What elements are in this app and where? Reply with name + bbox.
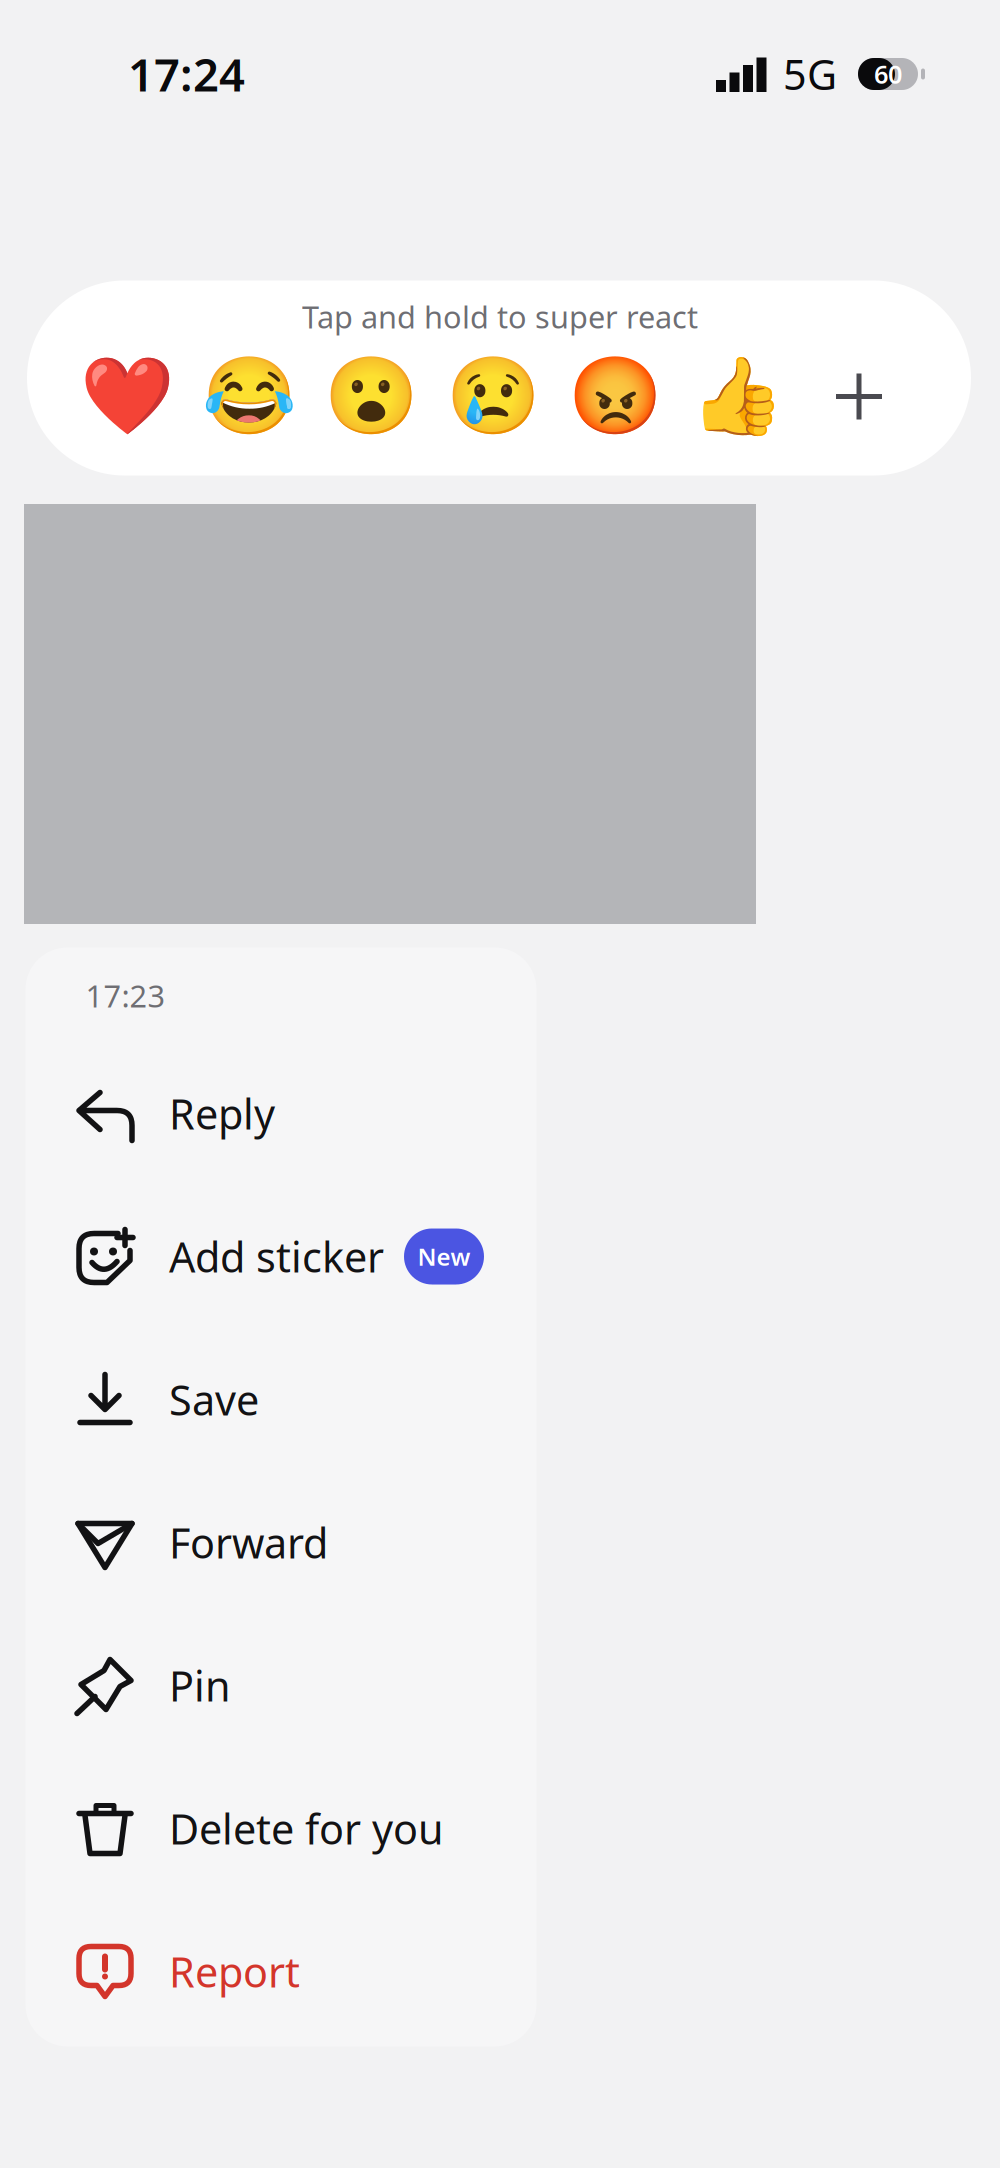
staticText: Report bbox=[169, 1944, 300, 1999]
button[interactable]: 😮 bbox=[310, 348, 432, 444]
button[interactable]: ❤️ bbox=[66, 348, 188, 444]
staticText: 😡 bbox=[567, 353, 662, 440]
staticText: Pin bbox=[169, 1658, 231, 1713]
button[interactable]: Pin bbox=[25, 1614, 536, 1757]
button[interactable]: Delete for you bbox=[25, 1757, 536, 1900]
button[interactable]: Add sticker bbox=[25, 1185, 536, 1328]
button[interactable]: Forward bbox=[25, 1471, 536, 1614]
staticText: 😮 bbox=[323, 353, 418, 440]
staticText: Reply bbox=[169, 1086, 275, 1141]
button[interactable]: Save bbox=[25, 1328, 536, 1471]
staticText: Add sticker bbox=[169, 1229, 384, 1284]
staticText: Forward bbox=[169, 1515, 328, 1570]
staticText: 17:24 bbox=[128, 44, 245, 104]
staticText: ❤️ bbox=[79, 353, 174, 440]
staticText: Delete for you bbox=[169, 1801, 444, 1856]
staticText: Tap and hold to super react bbox=[302, 296, 698, 337]
staticText: 5G bbox=[783, 47, 837, 101]
staticText: Save bbox=[169, 1372, 259, 1427]
button[interactable]: 😢 bbox=[432, 348, 554, 444]
button[interactable]: Reply bbox=[25, 1042, 536, 1185]
staticText: 😢 bbox=[445, 353, 540, 440]
button[interactable]: Report bbox=[25, 1900, 536, 2043]
button[interactable]: More reactions bbox=[798, 348, 920, 444]
staticText: 😂 bbox=[201, 353, 296, 440]
staticText: 👍 bbox=[689, 353, 784, 440]
button[interactable]: 😡 bbox=[554, 348, 676, 444]
staticText: 17:23 bbox=[85, 975, 165, 1016]
staticText: New bbox=[417, 1241, 470, 1272]
button[interactable]: 👍 bbox=[676, 348, 798, 444]
staticText: 60 bbox=[874, 57, 902, 91]
button[interactable]: 😂 bbox=[188, 348, 310, 444]
